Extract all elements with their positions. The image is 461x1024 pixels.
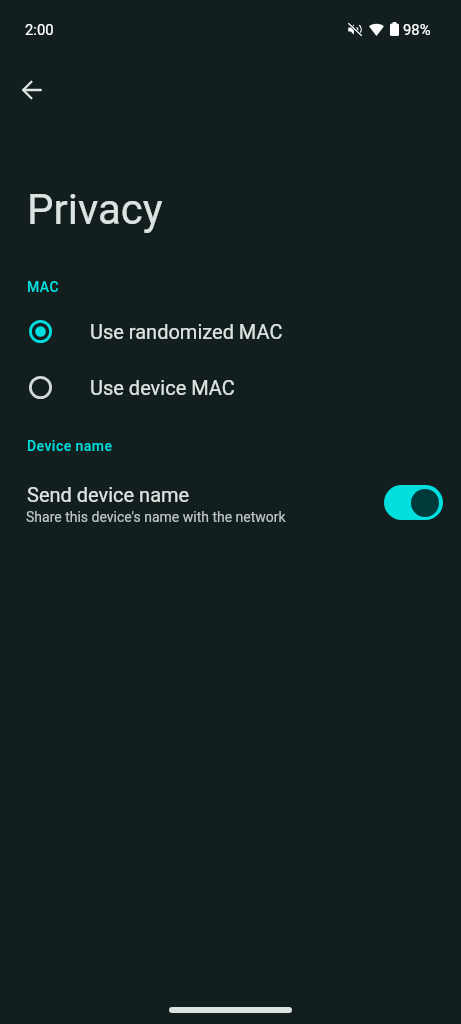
staticText: MAC (27, 279, 60, 295)
staticText: 98% (403, 21, 431, 38)
staticText: Privacy (27, 185, 163, 234)
button[interactable]: Use device MAC (0, 359, 461, 415)
staticText: Use device MAC (90, 376, 235, 399)
button[interactable]: Back (9, 67, 55, 113)
staticText: Share this device's name with the networ… (26, 509, 286, 525)
button[interactable]: Send device name (0, 470, 461, 535)
staticText: Send device name (27, 483, 190, 506)
staticText: 2:00 (25, 21, 54, 38)
staticText: Use randomized MAC (90, 320, 283, 343)
button[interactable]: Use randomized MAC (0, 303, 461, 359)
staticText: Device name (27, 438, 113, 454)
button[interactable]: Send device name, on (384, 485, 443, 520)
